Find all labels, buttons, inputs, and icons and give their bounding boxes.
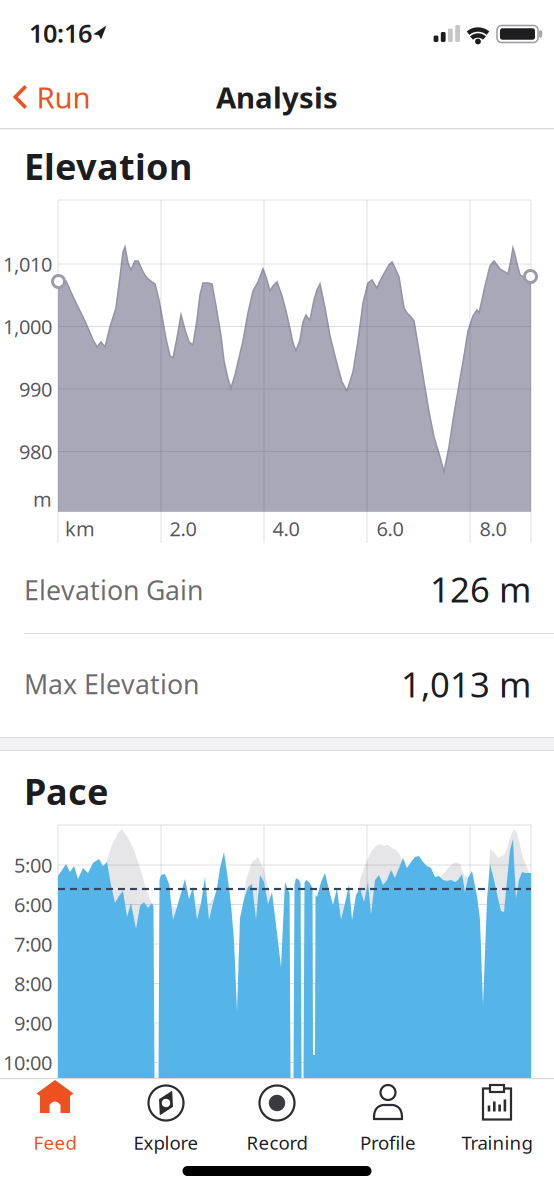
button[interactable]: Back to Run — [13, 74, 90, 120]
staticText: 1,000 — [3, 313, 52, 340]
staticText: m — [33, 486, 52, 512]
staticText: 5:00 — [14, 852, 52, 878]
staticText: 990 — [19, 376, 52, 402]
staticText: Training — [461, 1130, 532, 1155]
staticText: 1,010 — [3, 251, 52, 277]
staticText: 10:00 — [3, 1049, 52, 1076]
staticText: 980 — [19, 438, 52, 465]
staticText: 126 m — [430, 566, 531, 612]
staticText: km — [65, 515, 95, 542]
button[interactable]: Feed — [3, 1079, 107, 1163]
staticText: Profile — [360, 1130, 416, 1155]
button[interactable]: Profile — [336, 1079, 440, 1163]
staticText: Analysis — [216, 77, 338, 116]
button[interactable]: Explore — [114, 1079, 218, 1163]
staticText: 6.0 — [376, 515, 403, 542]
staticText: 8.0 — [479, 515, 506, 542]
staticText: 2.0 — [169, 515, 196, 542]
staticText: Pace — [24, 767, 108, 815]
button[interactable]: Record — [225, 1079, 329, 1163]
button[interactable]: Training — [445, 1079, 549, 1163]
staticText: Max Elevation — [24, 666, 199, 702]
staticText: 1,013 m — [401, 661, 531, 707]
staticText: 6:00 — [14, 891, 52, 918]
staticText: 10:16 — [29, 16, 92, 50]
staticText: Explore — [133, 1130, 198, 1155]
staticText: 7:00 — [14, 931, 52, 957]
staticText: Run — [36, 77, 90, 116]
staticText: Elevation Gain — [24, 572, 203, 608]
staticText: 8:00 — [14, 970, 52, 997]
staticText: 9:00 — [14, 1010, 52, 1036]
staticText: Record — [246, 1130, 307, 1155]
staticText: Feed — [33, 1130, 76, 1155]
staticText: 4.0 — [272, 515, 299, 542]
staticText: Elevation — [24, 142, 192, 190]
